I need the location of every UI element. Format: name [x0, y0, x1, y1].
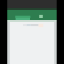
button[interactable]: [4, 11, 28, 32]
button[interactable]: [4, 4, 28, 10]
